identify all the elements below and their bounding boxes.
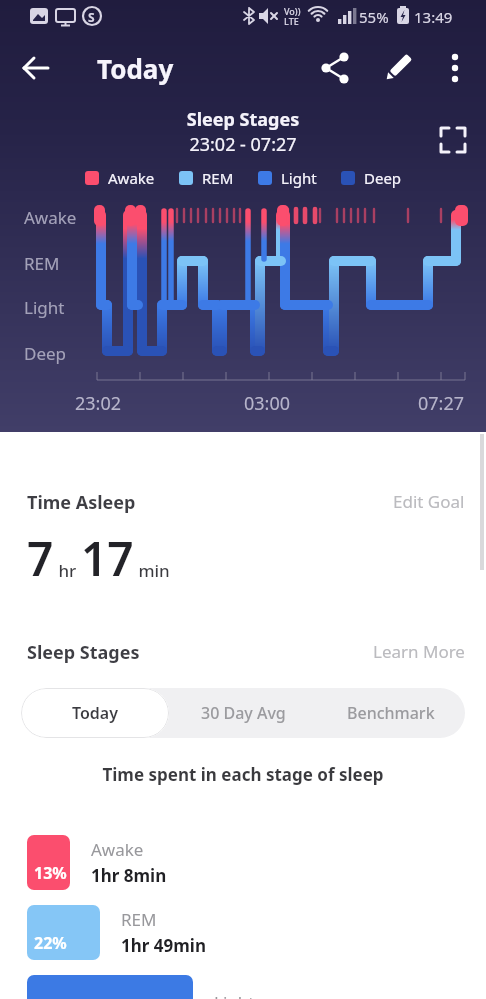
staticText: Awake: [108, 168, 155, 188]
staticText: Sleep Stages: [0, 107, 486, 132]
staticText: Light: [24, 296, 65, 319]
staticText: 1hr 49min: [121, 934, 206, 957]
staticText: Benchmark: [347, 702, 435, 724]
staticText: Light: [214, 991, 255, 999]
staticText: Today: [72, 702, 119, 724]
staticText: 17: [81, 527, 134, 590]
button[interactable]: [440, 127, 466, 153]
staticText: 23:02: [75, 391, 122, 416]
button[interactable]: 30 Day Avg: [169, 688, 317, 738]
staticText: Sleep Stages: [27, 640, 140, 665]
staticText: hr: [54, 559, 81, 582]
staticText: 30 Day Avg: [201, 702, 286, 724]
staticText: 1hr 8min: [91, 864, 167, 887]
staticText: Deep: [24, 342, 67, 365]
staticText: 13:49: [414, 7, 453, 27]
staticText: Light: [281, 168, 317, 188]
staticText: REM: [121, 908, 157, 931]
button[interactable]: Learn More: [373, 640, 465, 663]
staticText: min: [134, 559, 170, 582]
staticText: Time Asleep: [27, 490, 136, 515]
button[interactable]: [14, 46, 58, 90]
staticText: 22%: [34, 932, 67, 954]
staticText: Deep: [364, 168, 402, 188]
staticText: 07:27: [418, 391, 465, 416]
staticText: 13%: [34, 862, 67, 884]
staticText: Awake: [91, 838, 144, 861]
staticText: REM: [24, 252, 60, 275]
button[interactable]: Edit Goal: [393, 490, 465, 513]
staticText: 55%: [359, 7, 389, 27]
staticText: Vo)): [284, 5, 301, 17]
staticText: S: [88, 9, 95, 25]
staticText: Today: [97, 51, 174, 86]
button[interactable]: Today: [21, 688, 169, 738]
staticText: 23:02 - 07:27: [0, 132, 486, 157]
staticText: REM: [202, 168, 234, 188]
staticText: 03:00: [244, 391, 291, 416]
button[interactable]: Benchmark: [317, 688, 465, 738]
staticText: 7: [27, 527, 54, 590]
staticText: Time spent in each stage of sleep: [0, 763, 486, 786]
button[interactable]: [313, 46, 357, 90]
staticText: LTE: [284, 15, 299, 27]
staticText: Awake: [24, 206, 77, 229]
button[interactable]: [433, 46, 477, 90]
button[interactable]: [376, 46, 420, 90]
